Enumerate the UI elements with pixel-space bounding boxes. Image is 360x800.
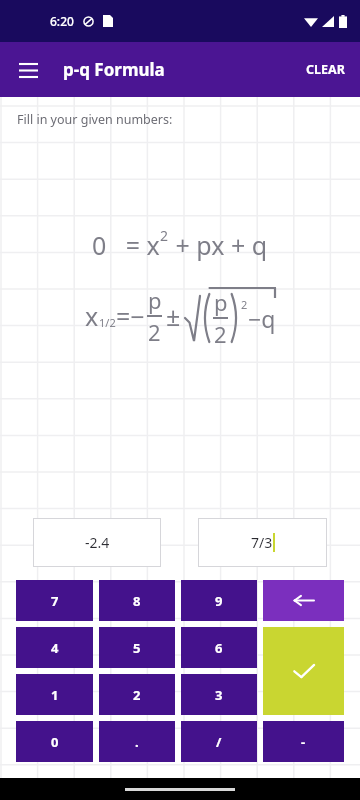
staticText: =− <box>116 299 145 333</box>
staticText: Fill in your given numbers: <box>17 111 173 128</box>
button[interactable]: 7 <box>16 580 93 621</box>
staticText: 0 <box>51 733 59 751</box>
button[interactable]: 0 <box>16 721 93 762</box>
staticText: 5 <box>133 639 141 657</box>
staticText: 1/2 <box>99 315 116 330</box>
staticText: 7 <box>51 592 59 610</box>
staticText: ± <box>166 299 181 333</box>
staticText: 0 = x <box>92 228 160 262</box>
staticText: . <box>135 733 139 751</box>
staticText: 8 <box>133 592 141 610</box>
button[interactable]: 2 <box>99 674 175 715</box>
staticText: 7/3 <box>251 533 273 552</box>
staticText: 2 <box>241 297 248 312</box>
button[interactable]: 5 <box>99 627 175 668</box>
button[interactable]: Open navigation menu <box>7 49 49 91</box>
staticText: + px + q <box>169 228 268 262</box>
staticText: 2 <box>160 226 169 245</box>
button[interactable]: 6 <box>181 627 257 668</box>
button[interactable]: CLEAR <box>291 42 360 97</box>
staticText: 3 <box>215 686 223 704</box>
staticText: 4 <box>51 639 59 657</box>
staticText: 9 <box>215 592 223 610</box>
staticText: -2.4 <box>85 533 110 552</box>
button[interactable]: -2.4 <box>33 518 161 567</box>
staticText: 6:20 <box>50 13 74 29</box>
button[interactable]: 7/3 <box>198 518 327 567</box>
staticText: 2 <box>214 319 227 349</box>
staticText: p-q Formula <box>63 58 165 81</box>
staticText: −q <box>248 303 276 334</box>
staticText: - <box>301 733 306 751</box>
button[interactable]: 9 <box>181 580 257 621</box>
staticText: p <box>214 287 228 317</box>
button[interactable]: / <box>181 721 257 762</box>
button[interactable]: 4 <box>16 627 93 668</box>
button[interactable]: . <box>99 721 175 762</box>
staticText: p <box>148 285 162 315</box>
button[interactable]: 8 <box>99 580 175 621</box>
staticText: / <box>216 733 222 751</box>
button[interactable]: 1 <box>16 674 93 715</box>
staticText: 1 <box>51 686 59 704</box>
staticText: CLEAR <box>306 61 345 78</box>
staticText: 2 <box>148 317 161 347</box>
staticText: x <box>85 299 99 333</box>
button[interactable]: 3 <box>181 674 257 715</box>
staticText: 2 <box>133 686 141 704</box>
button[interactable]: Backspace <box>263 580 344 621</box>
button[interactable]: Confirm <box>263 627 344 715</box>
staticText: 6 <box>215 639 223 657</box>
button[interactable]: - <box>263 721 344 762</box>
